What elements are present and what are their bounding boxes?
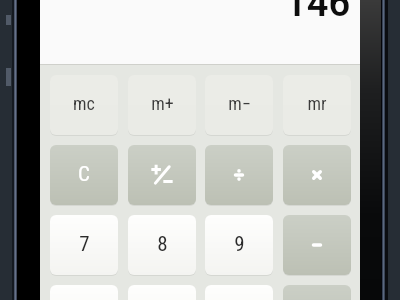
button[interactable]: 6 xyxy=(205,285,273,300)
button[interactable]: C xyxy=(50,145,118,205)
staticText: mc xyxy=(73,93,95,114)
button[interactable]: Plus xyxy=(283,285,351,300)
button[interactable]: mc xyxy=(50,75,118,135)
button[interactable]: 9 xyxy=(205,215,273,275)
button[interactable]: Minus xyxy=(283,215,351,275)
other: Minus xyxy=(311,239,323,251)
button[interactable]: Plus minus xyxy=(128,145,196,205)
button[interactable]: 5 xyxy=(128,285,196,300)
button[interactable]: Divide xyxy=(205,145,273,205)
button[interactable]: mr xyxy=(283,75,351,135)
staticText: mr xyxy=(307,93,327,114)
staticText: C xyxy=(78,162,90,187)
staticText: 8 xyxy=(157,232,168,257)
button[interactable]: m+ xyxy=(128,75,196,135)
button[interactable]: 7 xyxy=(50,215,118,275)
other: Plus minus xyxy=(150,163,174,187)
staticText: 7 xyxy=(79,232,90,257)
staticText: m− xyxy=(228,93,251,114)
staticText: 9 xyxy=(234,232,245,257)
button[interactable]: 8 xyxy=(128,215,196,275)
other: Divide xyxy=(233,169,245,181)
staticText: m+ xyxy=(151,93,174,114)
other: Multiply xyxy=(312,170,322,180)
staticText: 146 xyxy=(285,0,351,26)
button[interactable]: Multiply xyxy=(283,145,351,205)
button[interactable]: 4 xyxy=(50,285,118,300)
button[interactable]: m− xyxy=(205,75,273,135)
